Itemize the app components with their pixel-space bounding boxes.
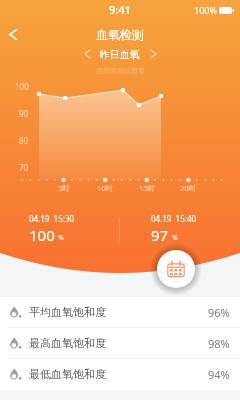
staticText: 80 bbox=[19, 135, 29, 146]
staticText: 70 bbox=[19, 162, 29, 173]
button[interactable]: 平均血氧饱和度 bbox=[0, 297, 240, 328]
button[interactable]: Back bbox=[0, 23, 25, 45]
staticText: 94% bbox=[208, 367, 230, 382]
staticText: 最低血氧饱和度 bbox=[29, 367, 106, 381]
button[interactable]: Select date bbox=[157, 250, 195, 288]
staticText: % bbox=[172, 233, 178, 243]
staticText: 100 bbox=[15, 81, 29, 92]
staticText: 最高血氧饱和度 bbox=[29, 336, 106, 350]
button[interactable]: 04.19 15:40 bbox=[151, 213, 197, 245]
staticText: 98% bbox=[208, 336, 230, 351]
staticText: 昨日血氧 bbox=[100, 48, 140, 61]
staticText: 20时 bbox=[180, 183, 197, 193]
staticText: 5时 bbox=[58, 183, 70, 193]
staticText: 点按滑动以查看 bbox=[96, 66, 145, 75]
staticText: 血氧检测 bbox=[96, 27, 144, 42]
staticText: 10时 bbox=[97, 183, 114, 193]
button[interactable]: Next day bbox=[146, 47, 160, 61]
button[interactable]: Previous day bbox=[80, 47, 94, 61]
staticText: % bbox=[58, 233, 64, 243]
button[interactable]: 最高血氧饱和度 bbox=[0, 328, 240, 359]
staticText: 100 bbox=[29, 225, 55, 245]
staticText: 9:41 bbox=[109, 2, 131, 17]
staticText: 15时 bbox=[139, 183, 156, 193]
staticText: 96% bbox=[208, 305, 230, 320]
button[interactable]: 最低血氧饱和度 bbox=[0, 359, 240, 390]
staticText: 100% bbox=[194, 4, 217, 16]
staticText: 90 bbox=[19, 108, 29, 119]
staticText: 04.19 15:30 bbox=[29, 213, 75, 224]
button[interactable]: 04.19 15:30 bbox=[29, 213, 75, 245]
staticText: 04.19 15:40 bbox=[151, 213, 197, 224]
staticText: 97 bbox=[151, 225, 169, 245]
staticText: 平均血氧饱和度 bbox=[29, 305, 106, 319]
